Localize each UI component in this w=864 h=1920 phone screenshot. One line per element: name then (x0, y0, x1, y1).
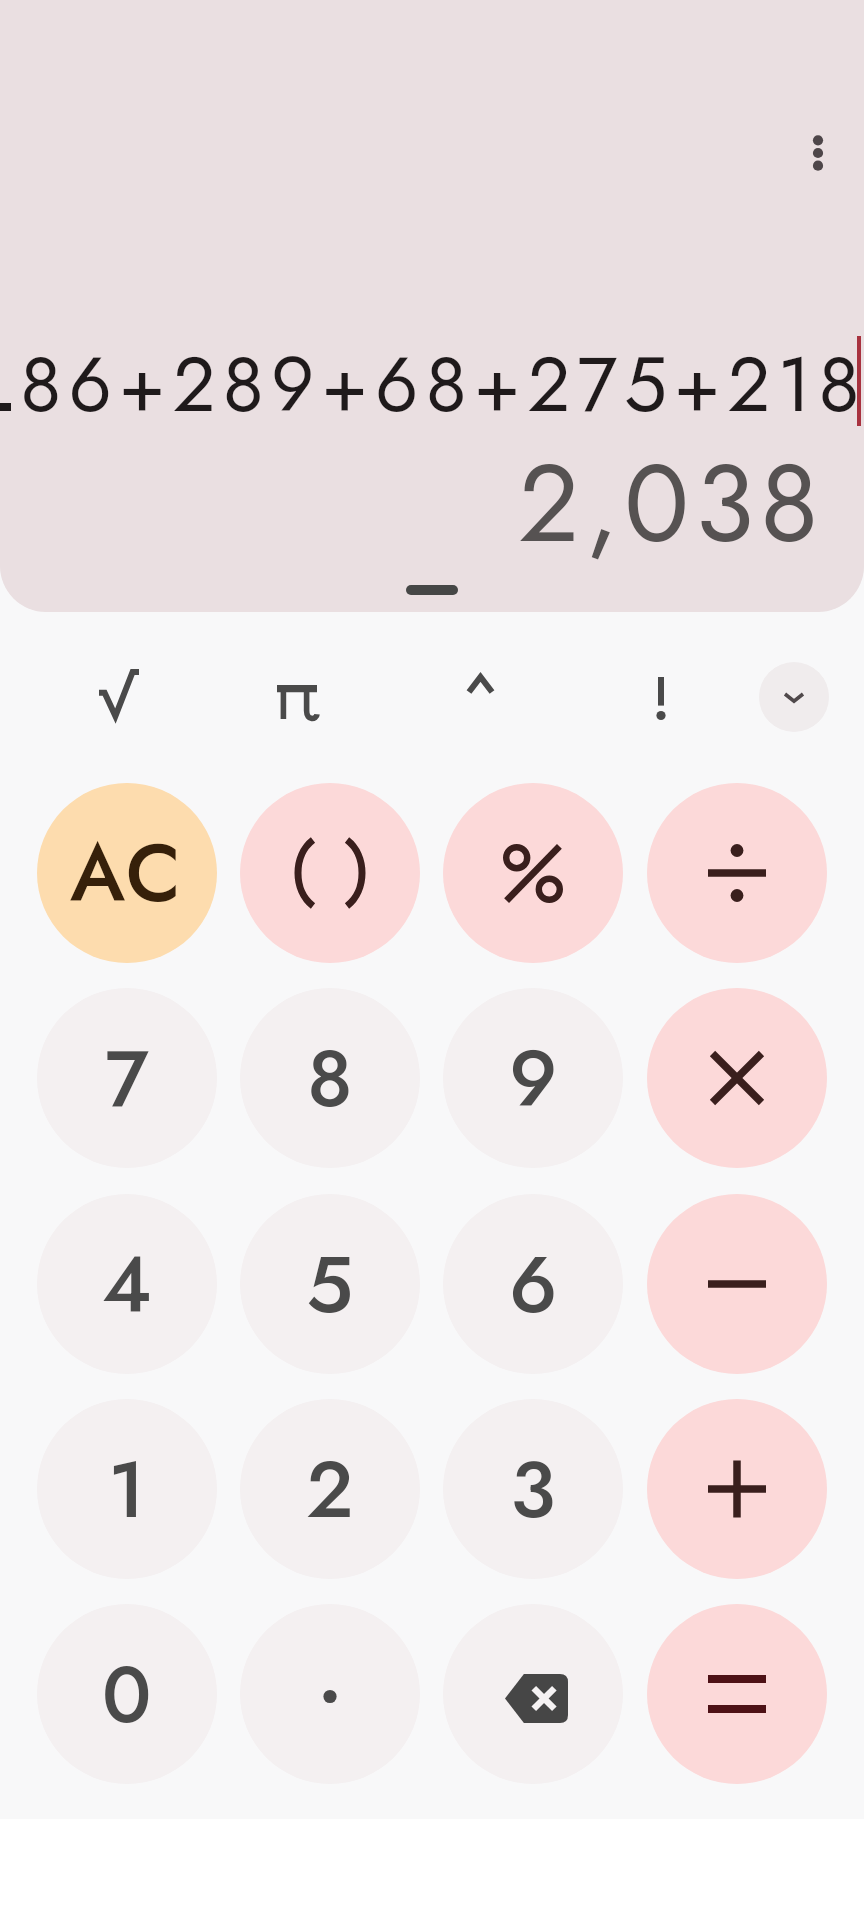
button[interactable]: 7 (37, 988, 217, 1168)
staticText: AC (70, 815, 185, 931)
staticText: 1 (108, 1432, 146, 1546)
staticText: 6 (509, 1227, 558, 1341)
button[interactable]: 9 (443, 988, 623, 1168)
button[interactable]: 5 (240, 1194, 420, 1374)
button[interactable]: 1 (37, 1399, 217, 1579)
staticText: 8 (307, 1021, 353, 1135)
button[interactable]: Backspace (443, 1604, 623, 1784)
staticText: 186+289+68+275+218 (0, 330, 864, 440)
button[interactable]: 3 (443, 1399, 623, 1579)
button[interactable]: AC (37, 783, 217, 963)
button[interactable]: 2 (240, 1399, 420, 1579)
staticText: 2,038 (518, 425, 825, 581)
staticText: 3 (510, 1432, 556, 1546)
button[interactable]: 4 (37, 1194, 217, 1374)
staticText: 9 (509, 1021, 558, 1135)
button[interactable]: 0 (37, 1604, 217, 1784)
button[interactable]: Equals (647, 1604, 827, 1784)
button[interactable]: More options (786, 121, 850, 185)
button[interactable]: Collapse (759, 662, 829, 732)
button[interactable]: Percent (443, 783, 623, 963)
button[interactable]: Multiply (647, 988, 827, 1168)
button[interactable]: Divide (647, 783, 827, 963)
staticText: 0 (102, 1637, 152, 1751)
button[interactable]: Pi (235, 645, 359, 759)
staticText: 5 (306, 1227, 354, 1341)
button[interactable]: Square root (57, 637, 181, 751)
staticText: 4 (102, 1227, 152, 1341)
button[interactable]: Decimal point (240, 1604, 420, 1784)
button[interactable]: 6 (443, 1194, 623, 1374)
button[interactable]: Plus (647, 1399, 827, 1579)
button[interactable]: Power (418, 627, 542, 741)
button[interactable]: 8 (240, 988, 420, 1168)
button[interactable]: Parentheses (240, 783, 420, 963)
staticText: 2 (306, 1432, 354, 1546)
button[interactable]: Factorial (599, 640, 723, 754)
staticText: 7 (105, 1021, 149, 1135)
button[interactable]: Minus (647, 1194, 827, 1374)
